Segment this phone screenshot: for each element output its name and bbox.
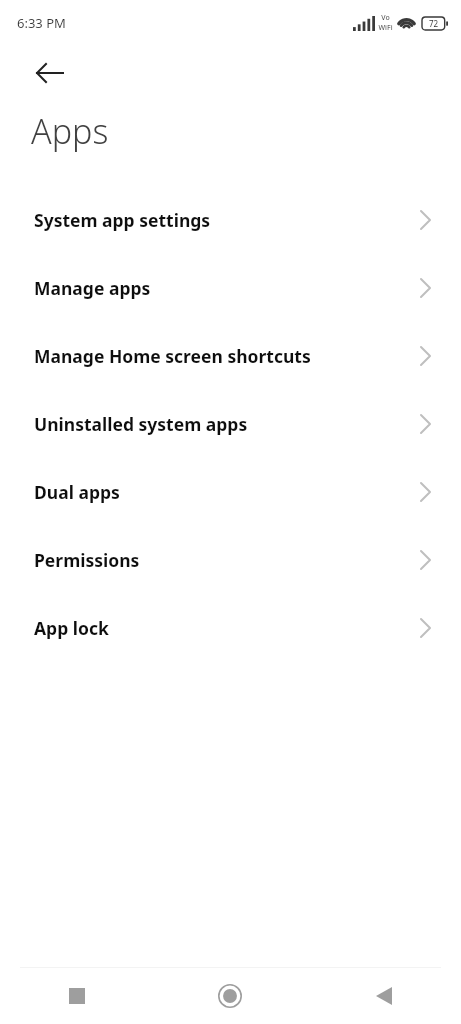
staticText: App lock [34,616,109,640]
staticText: 6:33 PM [17,14,66,32]
button[interactable]: Back [24,48,76,98]
staticText: Vo [381,13,390,23]
staticText: Manage Home screen shortcuts [34,344,311,368]
button[interactable]: Recents [0,968,153,1024]
button[interactable]: Home [153,968,307,1024]
button[interactable]: App lock [0,594,461,662]
button[interactable]: Dual apps [0,458,461,526]
button[interactable]: System app settings [0,186,461,254]
staticText: Manage apps [34,276,151,300]
staticText: System app settings [34,208,211,232]
staticText: Uninstalled system apps [34,412,248,436]
staticText: WiFi [378,23,393,33]
button[interactable]: Manage Home screen shortcuts [0,322,461,390]
staticText: 72 [429,18,439,29]
button[interactable]: Uninstalled system apps [0,390,461,458]
staticText: Apps [31,108,109,154]
staticText: Dual apps [34,480,120,504]
button[interactable]: Back [307,968,461,1024]
button[interactable]: Permissions [0,526,461,594]
button[interactable]: Manage apps [0,254,461,322]
staticText: Permissions [34,548,140,572]
